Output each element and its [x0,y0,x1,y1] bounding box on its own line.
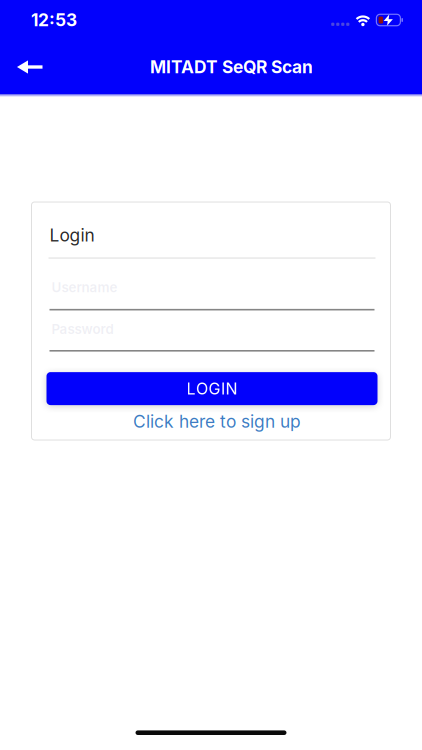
staticText: 12:53 [31,10,77,30]
button[interactable] [0,60,43,74]
button[interactable]: Click here to sign up [127,411,295,431]
staticText: Click here to sign up [133,411,301,431]
staticText: Login [49,225,94,245]
button[interactable]: LOGIN [46,372,377,405]
staticText: LOGIN [186,379,237,398]
staticText: Password [51,321,113,337]
staticText: MITADT SeQR Scan [150,57,313,77]
staticText: Username [51,280,117,295]
